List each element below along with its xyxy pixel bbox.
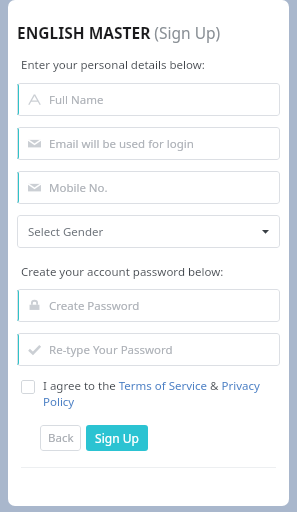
button[interactable]: I agree to the Terms of Service & Privac… [21, 378, 280, 409]
staticText: Select Gender [28, 224, 104, 240]
staticText: Email will be used for login [49, 136, 194, 152]
staticText: ENGLISH MASTER (Sign Up) [17, 22, 221, 43]
button[interactable]: Create Password [17, 289, 280, 322]
staticText: Sign Up [95, 430, 139, 446]
button[interactable]: Email will be used for login [17, 127, 280, 160]
staticText: I agree to the Terms of Service & Privac… [43, 378, 280, 409]
button[interactable]: Re-type Your Password [17, 333, 280, 366]
staticText: Re-type Your Password [49, 342, 173, 358]
button[interactable]: Back [40, 425, 81, 451]
button[interactable]: Mobile No. [17, 171, 280, 204]
staticText: Full Name [49, 92, 104, 108]
button[interactable]: Select Gender [17, 215, 280, 248]
button[interactable]: Full Name [17, 83, 280, 116]
button[interactable]: Sign Up [86, 425, 148, 451]
staticText: Mobile No. [49, 180, 108, 196]
staticText: Back [48, 430, 74, 446]
staticText: Enter your personal details below: [21, 57, 205, 73]
staticText: Create Password [49, 298, 140, 314]
staticText: Create your account password below: [21, 264, 224, 280]
